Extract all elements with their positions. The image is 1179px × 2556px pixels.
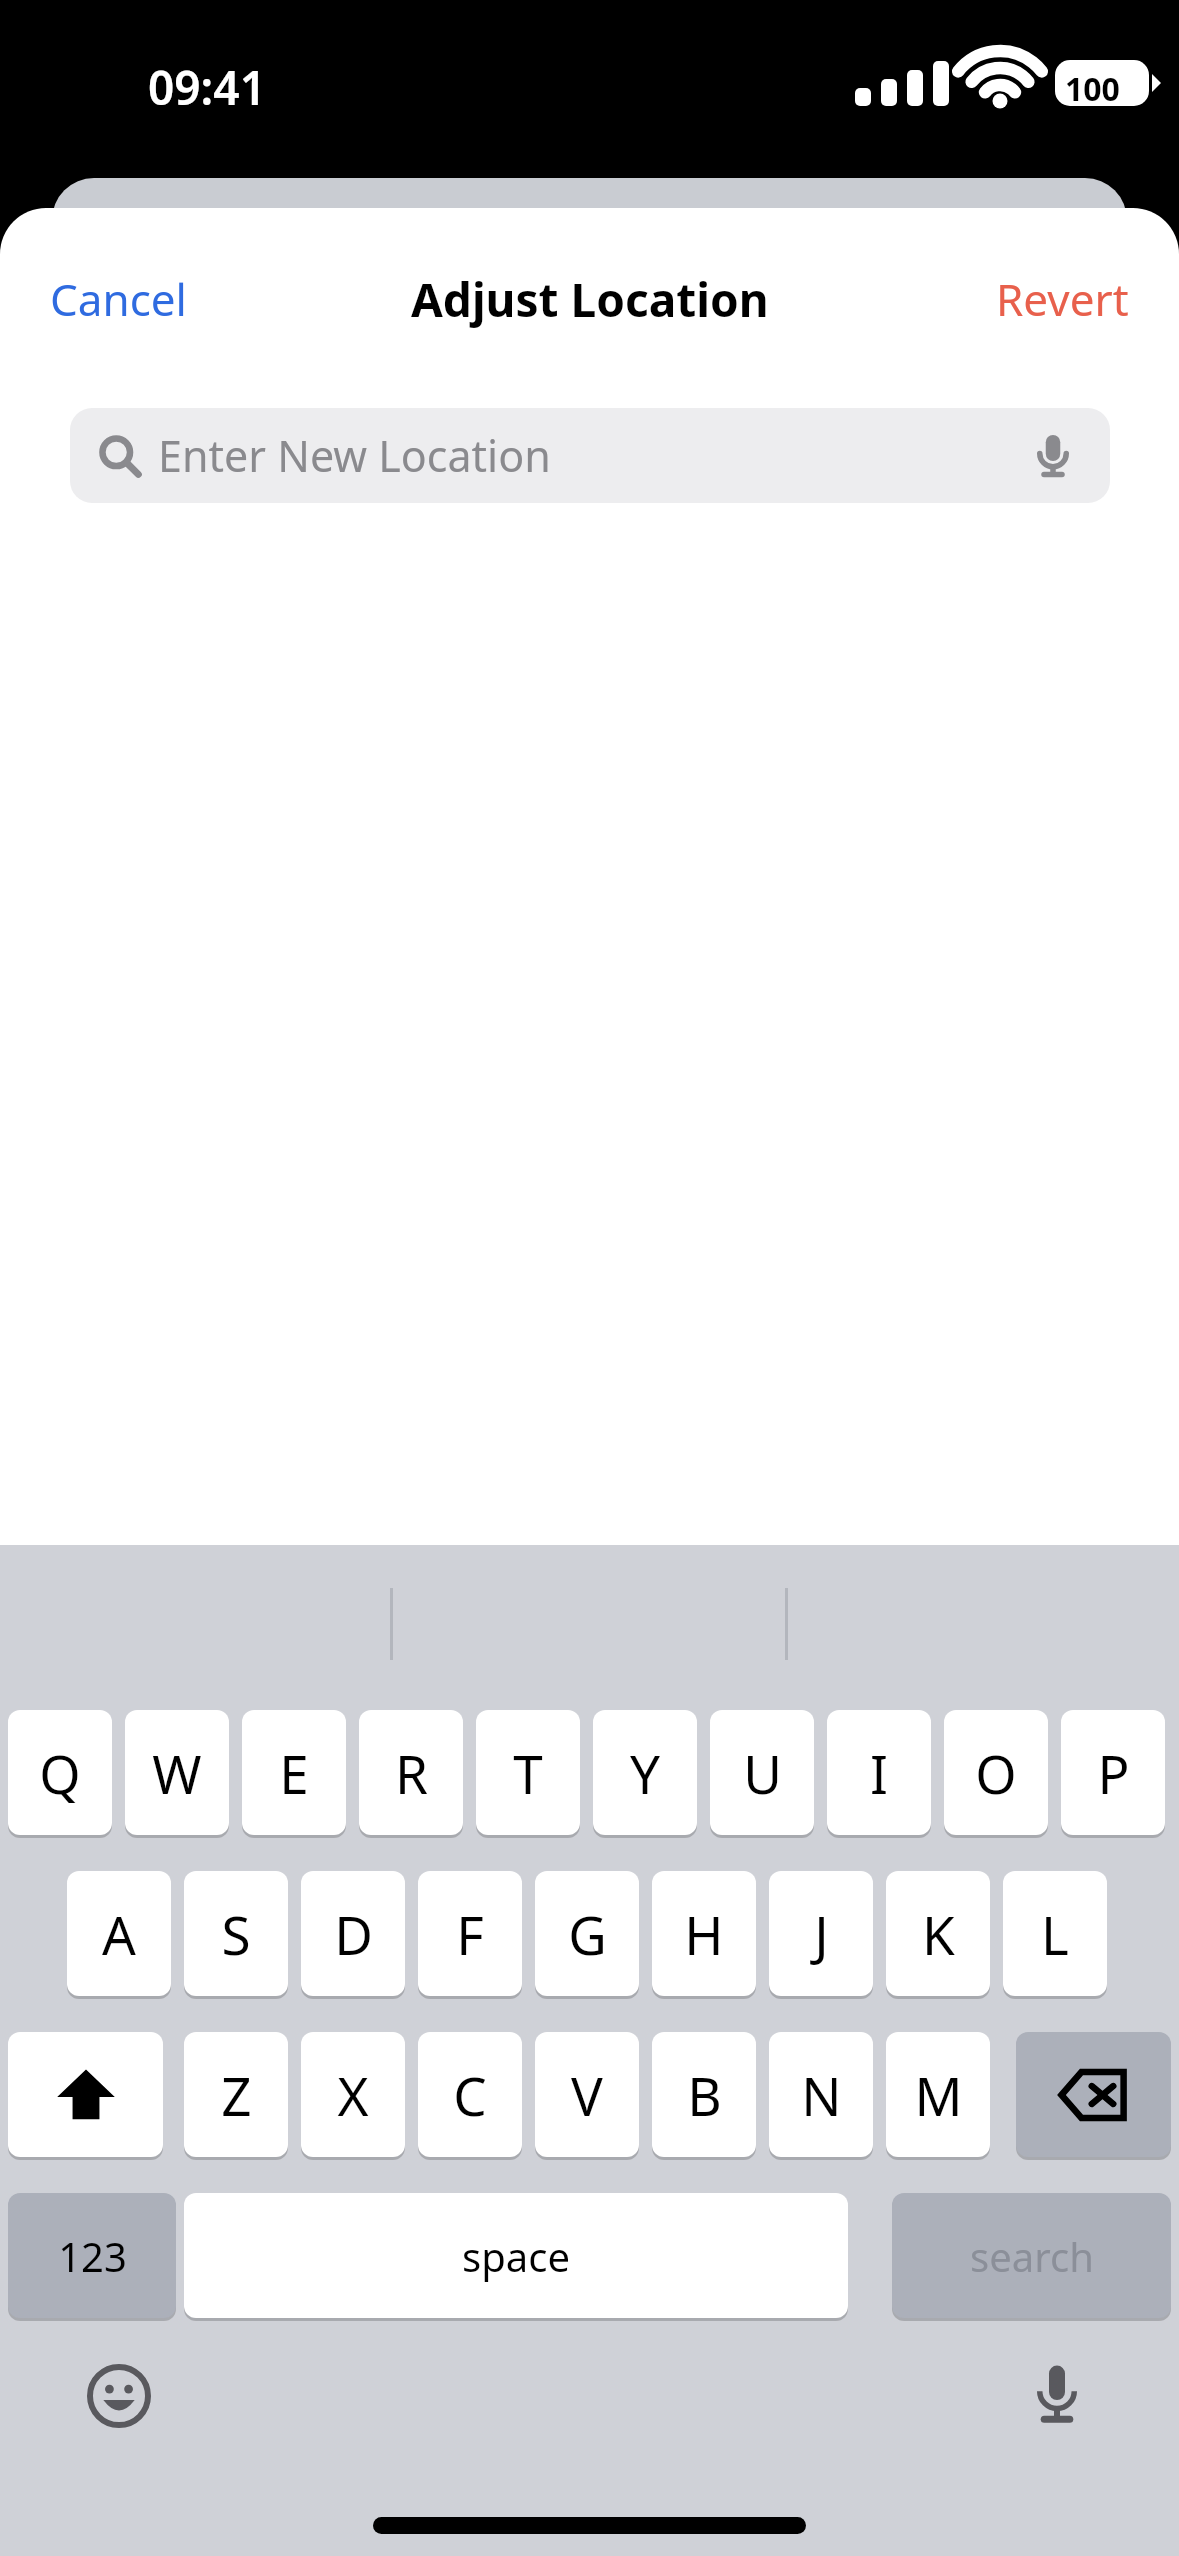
staticText: S	[221, 1898, 251, 1970]
staticText: Q	[39, 1737, 81, 1809]
staticText: Y	[630, 1737, 660, 1809]
staticText: K	[922, 1898, 955, 1970]
button[interactable]: R	[359, 1710, 463, 1835]
button[interactable]: C	[418, 2032, 522, 2157]
staticText: Enter New Location	[158, 426, 551, 485]
button[interactable]: G	[535, 1871, 639, 1996]
staticText: D	[334, 1898, 373, 1970]
staticText: M	[914, 2059, 963, 2131]
button[interactable]: P	[1061, 1710, 1165, 1835]
staticText: J	[814, 1898, 829, 1970]
staticText: space	[462, 2229, 570, 2283]
staticText: V	[571, 2059, 603, 2131]
staticText: E	[279, 1737, 309, 1809]
button[interactable]: Dictate	[1018, 421, 1088, 491]
button[interactable]: F	[418, 1871, 522, 1996]
button[interactable]: Cancel	[28, 255, 209, 343]
staticText: O	[975, 1737, 1017, 1809]
button[interactable]: V	[535, 2032, 639, 2157]
staticText: C	[453, 2059, 487, 2131]
staticText: Revert	[996, 269, 1129, 329]
button[interactable]: J	[769, 1871, 873, 1996]
button[interactable]: space	[184, 2193, 848, 2318]
staticText: H	[684, 1898, 724, 1970]
button[interactable]: Emoji	[76, 2353, 162, 2439]
staticText: U	[743, 1737, 782, 1809]
button[interactable]: W	[125, 1710, 229, 1835]
staticText: W	[152, 1737, 202, 1809]
button[interactable]: Shift	[8, 2032, 163, 2157]
button[interactable]: A	[67, 1871, 171, 1996]
button[interactable]: I	[827, 1710, 931, 1835]
button[interactable]: Enter New Location	[70, 408, 1110, 503]
button[interactable]: U	[710, 1710, 814, 1835]
button[interactable]: N	[769, 2032, 873, 2157]
button[interactable]: search	[892, 2193, 1171, 2318]
staticText: G	[568, 1898, 607, 1970]
button[interactable]: 123	[8, 2193, 176, 2318]
button[interactable]: Q	[8, 1710, 112, 1835]
staticText: Z	[221, 2059, 252, 2131]
button[interactable]: Revert	[974, 255, 1151, 343]
button[interactable]: S	[184, 1871, 288, 1996]
staticText: T	[513, 1737, 543, 1809]
button[interactable]: Dictation	[1013, 2351, 1101, 2439]
staticText: B	[687, 2059, 722, 2131]
button[interactable]: H	[652, 1871, 756, 1996]
button[interactable]: B	[652, 2032, 756, 2157]
staticText: X	[337, 2059, 369, 2131]
button[interactable]: E	[242, 1710, 346, 1835]
button[interactable]: X	[301, 2032, 405, 2157]
staticText: F	[456, 1898, 484, 1970]
button[interactable]: D	[301, 1871, 405, 1996]
staticText: 123	[58, 2229, 127, 2283]
staticText: Adjust Location	[411, 268, 769, 331]
button[interactable]: L	[1003, 1871, 1107, 1996]
button[interactable]: K	[886, 1871, 990, 1996]
staticText: search	[970, 2229, 1094, 2283]
button[interactable]: Y	[593, 1710, 697, 1835]
staticText: Cancel	[50, 269, 187, 329]
staticText: 100	[1065, 67, 1120, 111]
staticText: A	[102, 1898, 136, 1970]
staticText: I	[870, 1737, 888, 1809]
button[interactable]: M	[886, 2032, 990, 2157]
button[interactable]: T	[476, 1710, 580, 1835]
staticText: L	[1041, 1898, 1069, 1970]
button[interactable]: Backspace	[1016, 2032, 1171, 2157]
staticText: R	[395, 1737, 428, 1809]
staticText: N	[801, 2059, 842, 2131]
button[interactable]: Z	[184, 2032, 288, 2157]
staticText: 09:41	[148, 56, 266, 119]
button[interactable]: O	[944, 1710, 1048, 1835]
staticText: P	[1097, 1737, 1130, 1809]
